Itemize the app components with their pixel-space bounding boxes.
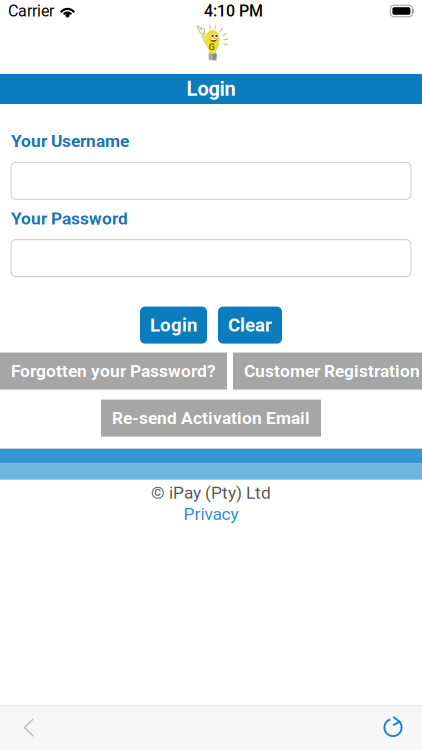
staticText: Clear	[228, 314, 272, 336]
button[interactable]: Privacy	[179, 503, 242, 524]
staticText: G	[208, 41, 214, 52]
staticText: © iPay (Pty) Ltd	[151, 483, 271, 503]
button[interactable]: Clear	[218, 307, 282, 344]
staticText: Customer Registration	[244, 361, 420, 381]
staticText: Re-send Activation Email	[112, 408, 310, 428]
button[interactable]: Login	[140, 307, 207, 344]
button[interactable]: Re-send Activation Email	[101, 400, 321, 437]
staticText: Your Username	[11, 131, 129, 151]
staticText: Login	[186, 77, 235, 101]
button[interactable]: Customer Registration	[233, 353, 422, 390]
staticText: Privacy	[183, 504, 238, 524]
button[interactable]: Reload	[366, 705, 420, 750]
staticText: Forgotten your Password?	[11, 361, 216, 381]
staticText: 4:10 PM	[204, 2, 263, 20]
staticText: Carrier	[8, 2, 54, 20]
staticText: Login	[150, 314, 197, 336]
staticText: Your Password	[11, 208, 128, 229]
button[interactable]: Forgotten your Password?	[0, 353, 227, 390]
button[interactable]: Back	[2, 705, 56, 750]
